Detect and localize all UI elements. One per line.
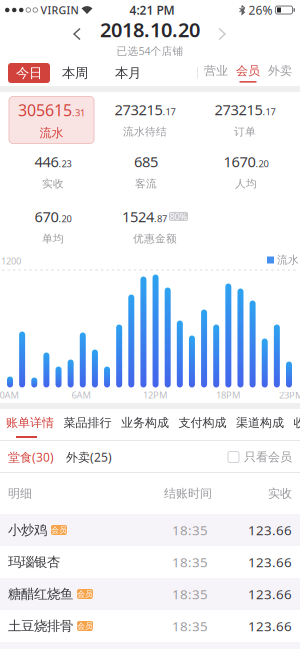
staticText: 4:21 PM xyxy=(129,2,174,18)
staticText: 账单详情 xyxy=(6,415,54,430)
staticText: .20 xyxy=(255,157,268,170)
staticText: 26% xyxy=(248,2,272,18)
staticText: 2018.10.20 xyxy=(100,16,200,43)
staticText: 6AM xyxy=(71,389,90,401)
staticText: 业务构成 xyxy=(121,415,169,430)
staticText: 12PM xyxy=(143,389,167,401)
staticText: 会员 xyxy=(51,525,67,535)
staticText: 1200 xyxy=(1,255,21,267)
staticText: 会员 xyxy=(236,63,260,78)
staticText: 123.66 xyxy=(248,585,292,603)
staticText: 结账时间 xyxy=(164,486,212,501)
staticText: 670 xyxy=(34,207,58,226)
staticText: 123.66 xyxy=(248,521,292,539)
staticText: 订单 xyxy=(234,125,256,138)
staticText: 只看会员 xyxy=(244,450,292,464)
staticText: 人均 xyxy=(235,177,257,190)
staticText: 18:35 xyxy=(172,617,208,635)
staticText: 流水待结 xyxy=(123,125,167,138)
staticText: 客流 xyxy=(135,177,157,190)
staticText: 本月 xyxy=(115,65,141,81)
staticText: 实收 xyxy=(268,486,292,501)
staticText: 明细 xyxy=(8,486,32,501)
staticText: 会员 xyxy=(77,621,93,631)
staticText: 446 xyxy=(34,152,58,171)
staticText: 23PM xyxy=(279,389,300,401)
staticText: 1524 xyxy=(122,207,154,226)
staticText: 收银员 xyxy=(293,415,300,430)
staticText: 玛瑙银杏 xyxy=(8,554,60,570)
staticText: 0AM xyxy=(0,389,18,401)
staticText: 273215 xyxy=(214,100,262,119)
staticText: 本周 xyxy=(62,65,88,81)
staticText: 18:35 xyxy=(172,553,208,571)
staticText: 优惠金额 xyxy=(133,232,177,245)
staticText: 18:35 xyxy=(172,521,208,539)
staticText: 305615 xyxy=(18,99,72,121)
staticText: 123.66 xyxy=(248,617,292,635)
staticText: .87 xyxy=(154,212,167,225)
staticText: 流水 xyxy=(39,126,63,140)
staticText: 1670 xyxy=(223,152,255,171)
staticText: 会员 xyxy=(77,589,93,599)
staticText: .23 xyxy=(58,157,71,170)
staticText: 今日 xyxy=(16,65,42,81)
staticText: 外卖 xyxy=(268,63,292,78)
staticText: 堂食(30) xyxy=(8,449,54,465)
staticText: 菜品排行 xyxy=(63,415,111,430)
staticText: VIRGIN xyxy=(40,3,78,17)
staticText: 外卖(25) xyxy=(66,449,112,465)
staticText: 支付构成 xyxy=(178,415,226,430)
staticText: 渠道构成 xyxy=(236,415,284,430)
staticText: 实收 xyxy=(42,177,64,190)
staticText: .31 xyxy=(72,106,85,119)
staticText: 土豆烧排骨 xyxy=(8,618,73,634)
staticText: 123.66 xyxy=(248,553,292,571)
staticText: 18PM xyxy=(216,389,240,401)
staticText: 流水 xyxy=(277,253,299,266)
staticText: 685 xyxy=(134,152,158,171)
staticText: 18:35 xyxy=(172,585,208,603)
staticText: 单均 xyxy=(42,232,64,245)
staticText: 80% xyxy=(169,210,187,223)
staticText: .20 xyxy=(58,212,71,225)
staticText: 营业 xyxy=(204,63,228,78)
staticText: .17 xyxy=(162,105,175,118)
staticText: 273215 xyxy=(114,100,162,119)
staticText: 糖醋红烧鱼 xyxy=(8,586,73,602)
staticText: 已选54个店铺 xyxy=(116,44,183,58)
staticText: 小炒鸡 xyxy=(8,522,47,538)
staticText: .17 xyxy=(262,105,275,118)
